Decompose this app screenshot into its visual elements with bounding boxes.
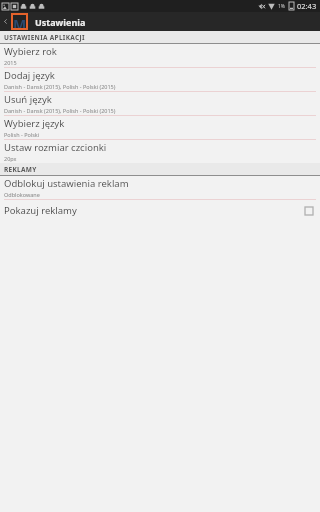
staticText: Wybierz język (4, 117, 65, 130)
staticText: USTAWIENIA APLIKACJI (4, 33, 85, 42)
staticText: 02:43 (297, 1, 317, 11)
staticText: Odblokuj ustawienia reklam (4, 177, 129, 190)
button[interactable]: Usuń język (0, 92, 320, 115)
staticText: Odblokowane (4, 191, 40, 198)
button[interactable]: Odblokuj ustawienia reklam (0, 176, 320, 199)
staticText: Polish - Polski (4, 131, 40, 138)
staticText: Usuń język (4, 93, 52, 106)
staticText: 20px (4, 155, 17, 162)
button[interactable]: Pokazuj reklamy (0, 200, 320, 221)
staticText: Pokazuj reklamy (4, 204, 77, 217)
staticText: Danish - Dansk (2015), Polish - Polski (… (4, 83, 116, 90)
staticText: Danish - Dansk (2015), Polish - Polski (… (4, 107, 116, 114)
staticText: Ustawienia (35, 16, 86, 28)
staticText: 2015 (4, 59, 17, 66)
staticText: M (13, 15, 26, 28)
staticText: Ustaw rozmiar czcionki (4, 141, 107, 154)
button[interactable]: Ustaw rozmiar czcionki (0, 140, 320, 163)
button[interactable]: Wybierz rok (0, 44, 320, 67)
staticText: Dodaj język (4, 69, 55, 82)
button[interactable]: Dodaj język (0, 68, 320, 91)
staticText: 1% (278, 3, 286, 10)
staticText: Wybierz rok (4, 45, 57, 58)
button[interactable]: Wybierz język (0, 116, 320, 139)
staticText: REKLAMY (4, 165, 37, 174)
button[interactable]: Back (0, 12, 11, 31)
